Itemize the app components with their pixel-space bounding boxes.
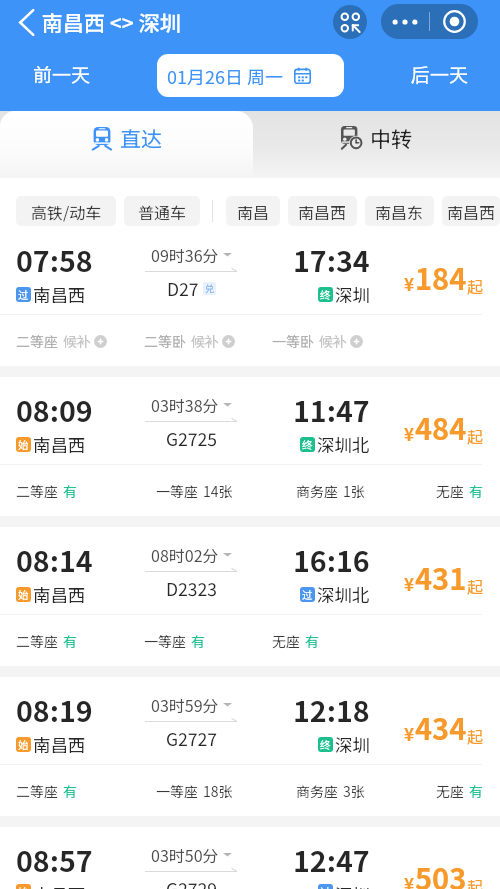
staticText: ¥	[404, 721, 415, 746]
staticText: 候补	[319, 331, 347, 351]
staticText: 3张	[343, 781, 365, 801]
staticText: 一等座	[156, 481, 198, 501]
staticText: 08:19	[16, 689, 93, 730]
staticText: 14张	[203, 481, 233, 501]
staticText: G2725	[166, 426, 217, 451]
staticText: 无座	[272, 631, 300, 651]
staticText: 商务座	[296, 481, 338, 501]
button[interactable]: More options	[381, 4, 429, 39]
staticText: 普通车	[138, 200, 187, 223]
staticText: ¥	[404, 871, 415, 889]
staticText: 二等座	[16, 631, 58, 651]
staticText: 始	[18, 884, 29, 889]
staticText: 18张	[203, 781, 233, 801]
staticText: 南昌西	[33, 732, 86, 757]
button[interactable]: 南昌	[226, 196, 280, 226]
staticText: ¥	[404, 571, 415, 596]
staticText: ¥	[404, 271, 415, 296]
staticText: 南昌西	[447, 200, 496, 223]
staticText: 17:34	[293, 239, 370, 280]
button[interactable]: 南昌东	[365, 196, 434, 226]
staticText: 03时50分	[151, 843, 219, 866]
staticText: 始	[18, 737, 29, 752]
button[interactable]: 08:57	[0, 827, 500, 889]
staticText: 深圳	[335, 732, 370, 757]
button[interactable]: 前一天	[0, 53, 101, 95]
staticText: 始	[18, 587, 29, 602]
staticText: 一等座	[156, 781, 198, 801]
staticText: 二等卧	[144, 331, 186, 351]
staticText: 过	[302, 587, 313, 602]
staticText: 南昌西	[33, 282, 86, 307]
staticText: 起	[467, 874, 484, 889]
staticText: G2729	[166, 876, 217, 889]
staticText: 08时02分	[151, 543, 219, 566]
staticText: 终	[302, 437, 313, 452]
staticText: 起	[467, 574, 484, 597]
staticText: 11:47	[293, 389, 370, 430]
staticText: 商务座	[296, 781, 338, 801]
staticText: 深圳	[335, 282, 370, 307]
staticText: 03时59分	[151, 693, 219, 716]
staticText: 07:58	[16, 239, 93, 280]
button[interactable]: 高铁/动车	[16, 196, 116, 226]
staticText: 终	[320, 737, 331, 752]
staticText: 08:57	[16, 839, 93, 880]
staticText: 中转	[370, 123, 412, 153]
staticText: 二等座	[16, 331, 58, 351]
staticText: 有	[469, 481, 483, 501]
staticText: 1张	[343, 481, 365, 501]
staticText: 候补	[63, 331, 91, 351]
staticText: 二等座	[16, 481, 58, 501]
staticText: 431	[415, 556, 467, 598]
staticText: 一等座	[144, 631, 186, 651]
staticText: 01月26日 周一	[167, 63, 283, 89]
staticText: 有	[305, 631, 319, 651]
button[interactable]: 南昌西 <> 深圳	[0, 4, 189, 40]
staticText: 有	[63, 781, 77, 801]
staticText: 08:09	[16, 389, 93, 430]
staticText: 12:47	[293, 839, 370, 880]
button[interactable]: 07:58	[0, 227, 500, 366]
staticText: 起	[467, 274, 484, 297]
button[interactable]: 直达	[0, 111, 253, 178]
staticText: 南昌东	[375, 200, 424, 223]
staticText: 兑	[205, 282, 215, 295]
staticText: 484	[415, 406, 467, 448]
staticText: 一等卧	[272, 331, 314, 351]
button[interactable]: 08:14	[0, 527, 500, 666]
staticText: 南昌西	[298, 200, 347, 223]
button[interactable]: 南昌西	[442, 196, 500, 226]
staticText: 南昌西	[33, 432, 86, 457]
staticText: G2727	[166, 726, 217, 751]
staticText: ¥	[404, 421, 415, 446]
button[interactable]: 后一天	[401, 53, 500, 95]
staticText: 有	[63, 481, 77, 501]
button[interactable]: 01月26日 周一	[157, 54, 344, 97]
staticText: 08:14	[16, 539, 93, 580]
staticText: D27	[167, 276, 199, 301]
staticText: 16:16	[293, 539, 370, 580]
staticText: 南昌西	[33, 582, 86, 607]
button[interactable]: 普通车	[124, 196, 200, 226]
staticText: 过	[320, 884, 331, 889]
staticText: 直达	[120, 123, 162, 153]
staticText: 深圳北	[317, 582, 370, 607]
staticText: 无座	[436, 781, 464, 801]
button[interactable]: Mini program	[333, 5, 367, 39]
button[interactable]: 南昌西	[288, 196, 357, 226]
button[interactable]: 中转	[253, 111, 500, 178]
staticText: 终	[320, 287, 331, 302]
button[interactable]: 08:09	[0, 377, 500, 516]
staticText: 184	[415, 256, 467, 298]
staticText: D2323	[166, 576, 217, 601]
staticText: 12:18	[293, 689, 370, 730]
staticText: 434	[415, 706, 467, 748]
button[interactable]: 08:19	[0, 677, 500, 816]
staticText: 有	[63, 631, 77, 651]
button[interactable]: Close	[430, 4, 478, 39]
staticText: 南昌西	[33, 882, 86, 889]
staticText: 深圳北	[317, 432, 370, 457]
staticText: 过	[18, 287, 29, 302]
staticText: 南昌	[237, 200, 270, 223]
